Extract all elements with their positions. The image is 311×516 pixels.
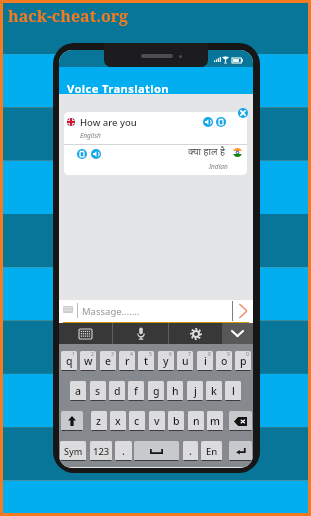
button[interactable]: n [188, 411, 204, 431]
staticText: r [125, 354, 130, 368]
button[interactable]: e [100, 351, 116, 371]
button[interactable]: j [187, 381, 203, 401]
staticText: En [206, 445, 218, 458]
button[interactable]: How are you [64, 112, 247, 175]
button[interactable]: 123 [90, 441, 112, 461]
staticText: 5 [149, 351, 152, 358]
button[interactable]: g [148, 381, 164, 401]
staticText: e [105, 354, 112, 368]
staticText: w [84, 354, 93, 368]
button[interactable]: p [235, 351, 251, 371]
button[interactable]: Shift [61, 411, 83, 431]
staticText: k [211, 384, 217, 398]
button[interactable]: f [128, 381, 144, 401]
staticText: Massage....... [82, 305, 140, 318]
button[interactable]: Backspace [229, 411, 252, 431]
button[interactable]: . [183, 441, 198, 461]
staticText: t [144, 354, 149, 368]
button[interactable]: v [149, 411, 165, 431]
button[interactable]: m [207, 411, 223, 431]
button[interactable]: d [109, 381, 125, 401]
button[interactable]: c [129, 411, 145, 431]
button[interactable]: a [70, 381, 86, 401]
staticText: hack-cheat.org [8, 5, 129, 27]
button[interactable]: Space [134, 441, 179, 461]
staticText: q [66, 354, 73, 368]
button[interactable]: o [216, 351, 232, 371]
button[interactable]: t [138, 351, 154, 371]
button[interactable]: Settings [169, 323, 222, 344]
staticText: v [154, 414, 160, 428]
button[interactable]: Voice input [113, 323, 168, 344]
button[interactable]: Enter [229, 441, 252, 461]
button[interactable]: b [168, 411, 184, 431]
staticText: 9 [227, 351, 230, 358]
staticText: Voice Translation [67, 81, 169, 96]
staticText: 0 [246, 351, 249, 358]
staticText: i [204, 354, 207, 368]
staticText: 7 [188, 351, 191, 358]
staticText: 4 [130, 351, 133, 358]
button[interactable]: l [225, 381, 241, 401]
staticText: . [189, 444, 192, 458]
button[interactable]: En [201, 441, 222, 461]
staticText: x [115, 414, 121, 428]
staticText: क्या हाल है [188, 145, 225, 158]
staticText: How are you [80, 116, 137, 129]
staticText: p [240, 354, 247, 368]
button[interactable]: u [177, 351, 193, 371]
button[interactable]: y [158, 351, 174, 371]
staticText: a [75, 384, 82, 398]
staticText: m [210, 414, 220, 428]
staticText: 123 [93, 445, 110, 458]
button[interactable]: Hide keyboard [222, 323, 253, 344]
staticText: 6 [169, 351, 172, 358]
button[interactable]: Sym [60, 441, 86, 461]
staticText: b [173, 414, 180, 428]
staticText: z [96, 414, 102, 428]
button[interactable]: i [197, 351, 213, 371]
button[interactable]: k [206, 381, 222, 401]
staticText: 2 [91, 351, 94, 358]
staticText: d [114, 384, 121, 398]
button[interactable]: w [80, 351, 96, 371]
button[interactable]: Speak [91, 149, 101, 159]
staticText: 3 [111, 351, 114, 358]
staticText: l [232, 384, 235, 398]
button[interactable]: Keyboard [59, 323, 112, 344]
staticText: h [172, 384, 179, 398]
button[interactable]: Copy [77, 149, 87, 159]
button[interactable]: . [115, 441, 132, 461]
staticText: 8 [208, 351, 211, 358]
button[interactable]: r [119, 351, 135, 371]
button[interactable]: Copy [216, 117, 226, 127]
staticText: . [122, 444, 125, 458]
staticText: English [80, 131, 101, 140]
staticText: 1 [72, 351, 75, 358]
staticText: Indian [209, 162, 228, 171]
staticText: s [95, 384, 101, 398]
staticText: j [194, 384, 197, 398]
button[interactable]: q [61, 351, 77, 371]
staticText: g [153, 384, 160, 398]
button[interactable]: Voice Translation [59, 67, 253, 94]
staticText: y [163, 354, 169, 368]
staticText: f [134, 384, 138, 398]
staticText: u [182, 354, 189, 368]
staticText: Sym [64, 445, 83, 457]
button[interactable]: Close [238, 108, 248, 118]
button[interactable]: s [90, 381, 106, 401]
button[interactable]: h [167, 381, 183, 401]
staticText: n [193, 414, 200, 428]
button[interactable]: x [110, 411, 126, 431]
staticText: o [221, 354, 228, 368]
button[interactable]: Speak [203, 117, 213, 127]
staticText: c [134, 414, 140, 428]
button[interactable]: Send [233, 300, 252, 322]
button[interactable]: z [91, 411, 107, 431]
